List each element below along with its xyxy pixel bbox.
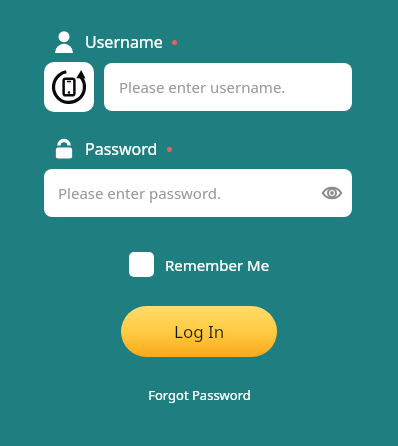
button[interactable]: Log In [121,306,277,357]
staticText: Remember Me [165,255,270,275]
button[interactable]: Remember Me [125,248,274,281]
staticText: Log In [174,320,225,343]
staticText: Forgot Password [148,386,251,404]
button[interactable]: Show password [312,173,352,213]
button[interactable]: Please enter username. [104,63,352,111]
button[interactable]: Scan device [44,62,94,112]
button[interactable]: Forgot Password [138,382,261,408]
staticText: Please enter username. [119,77,286,97]
button[interactable]: Please enter password. [44,169,352,217]
staticText: Username [85,31,163,53]
staticText: Please enter password. [58,183,222,203]
staticText: Password [85,138,158,160]
